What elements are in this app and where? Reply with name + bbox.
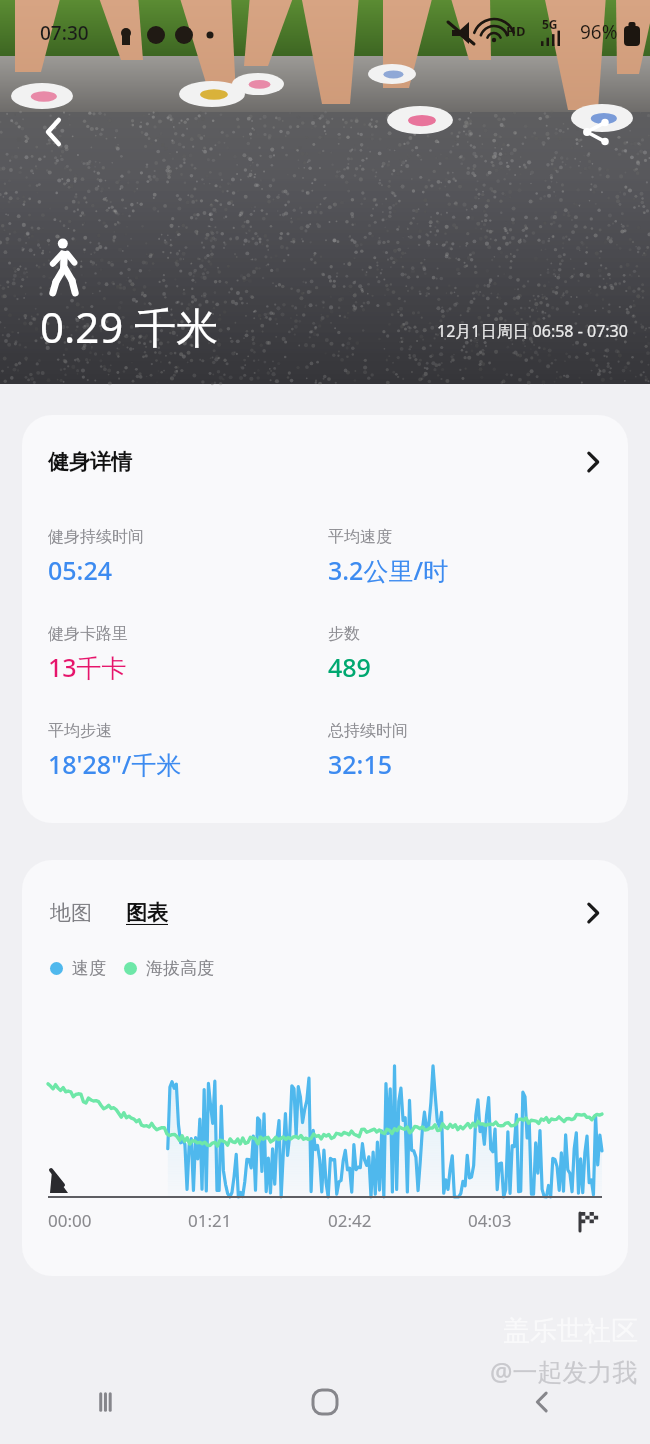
staticText: 3.2公里/时 (328, 553, 449, 587)
staticText: 13千卡 (48, 650, 127, 684)
staticText: 地图 (50, 900, 92, 926)
staticText: 07:30 (40, 20, 89, 46)
staticText: 图表 (126, 900, 168, 926)
staticText: 步数 (328, 624, 360, 644)
button[interactable]: Back (26, 104, 82, 160)
staticText: 健身持续时间 (48, 527, 144, 547)
staticText: 489 (328, 650, 371, 684)
button[interactable]: Home (216, 1360, 433, 1444)
staticText: 盖乐世社区 (503, 1314, 638, 1348)
button[interactable]: 图表 (122, 896, 172, 930)
button[interactable]: Share (568, 104, 624, 160)
staticText: 12月1日周日 06:58 - 07:30 (437, 320, 628, 342)
staticText: 健身详情 (48, 449, 132, 475)
button[interactable]: Back (433, 1360, 650, 1444)
staticText: 04:03 (468, 1209, 512, 1232)
staticText: 32:15 (328, 747, 393, 781)
staticText: 0.29 千米 (40, 298, 219, 355)
staticText: 05:24 (48, 553, 113, 587)
staticText: 96% (580, 19, 618, 45)
staticText: HD (506, 22, 526, 40)
staticText: 海拔高度 (146, 958, 214, 979)
staticText: 平均速度 (328, 527, 392, 547)
staticText: 01:21 (188, 1209, 232, 1232)
staticText: 00:00 (48, 1209, 92, 1232)
staticText: @一起发力我 (490, 1354, 638, 1388)
button[interactable]: 健身详情 (22, 415, 628, 487)
staticText: 总持续时间 (328, 721, 408, 741)
staticText: 02:42 (328, 1209, 372, 1232)
button[interactable]: Recents (0, 1360, 216, 1444)
staticText: 平均步速 (48, 721, 112, 741)
staticText: 5G (542, 16, 558, 32)
staticText: 18'28"/千米 (48, 747, 182, 781)
button[interactable]: 地图 (46, 896, 96, 930)
button[interactable]: Open chart (580, 900, 606, 926)
staticText: 速度 (72, 958, 106, 979)
staticText: 健身卡路里 (48, 624, 128, 644)
